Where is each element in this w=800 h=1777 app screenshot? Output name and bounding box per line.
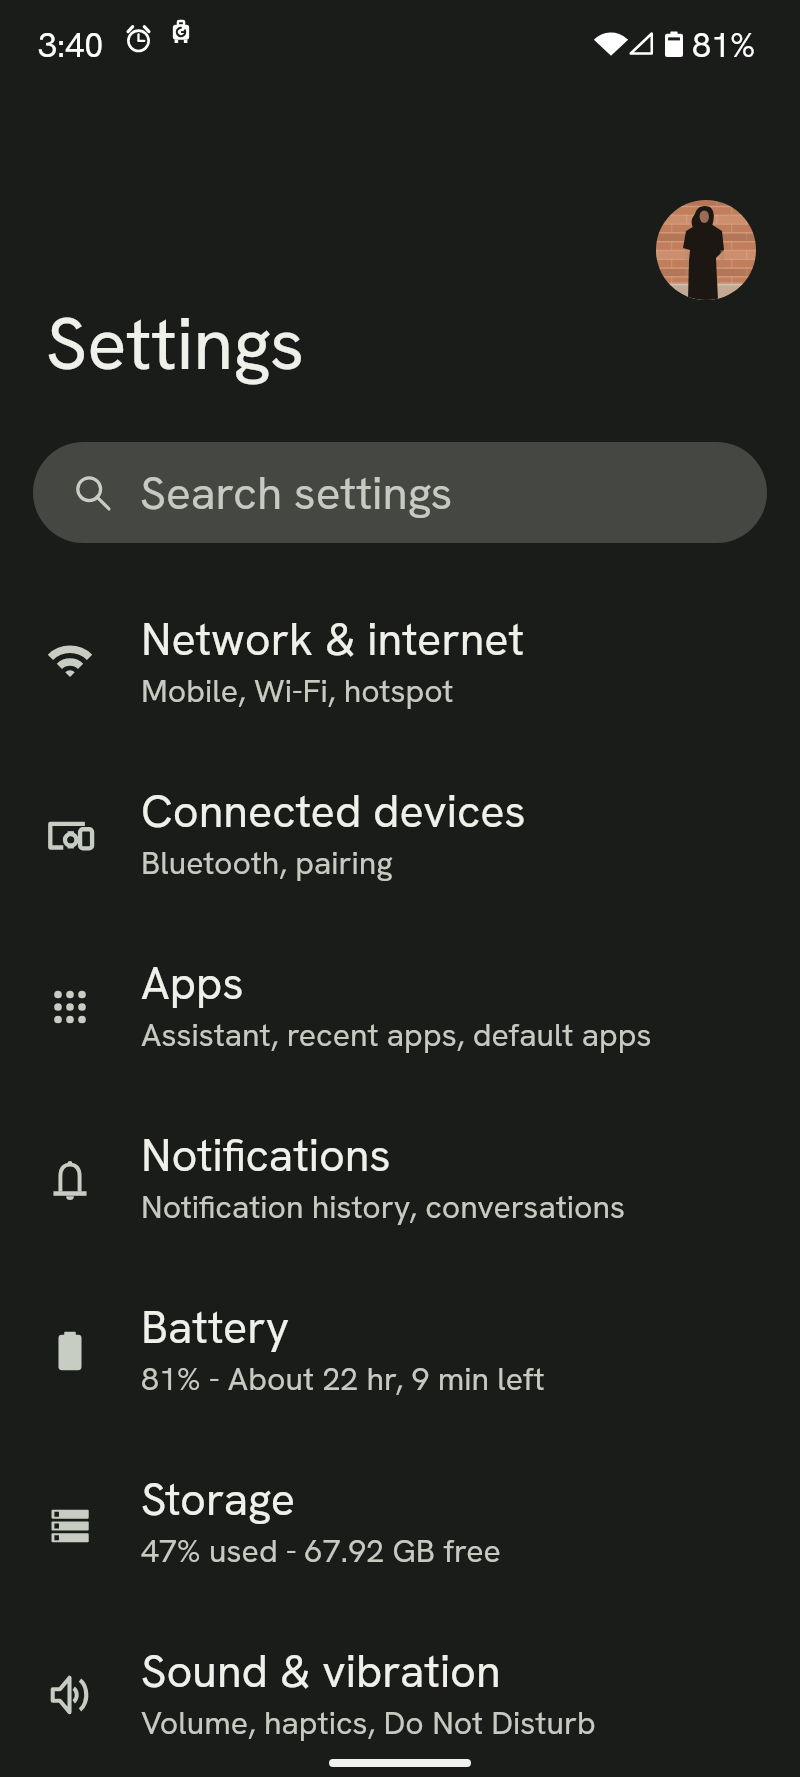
staticText: Storage [141,1470,296,1529]
staticText: Volume, haptics, Do Not Disturb [141,1702,596,1744]
staticText: 3:40 [38,23,104,67]
staticText: Search settings [140,463,453,523]
staticText: Bluetooth, pairing [141,842,393,884]
button[interactable]: Connected devices [0,758,800,930]
staticText: Connected devices [141,782,526,841]
staticText: Settings [46,296,305,391]
staticText: Battery [141,1298,290,1357]
staticText: Assistant, recent apps, default apps [141,1014,652,1056]
staticText: Mobile, Wi-Fi, hotspot [141,670,454,712]
button[interactable]: Notifications [0,1102,800,1274]
staticText: Apps [141,954,244,1013]
button[interactable]: Search settings [33,442,767,543]
staticText: 81% [692,23,756,67]
button[interactable]: Network & internet [0,586,800,758]
button[interactable]: Account [656,200,756,300]
staticText: Notification history, conversations [141,1186,626,1228]
button[interactable]: Storage [0,1446,800,1618]
staticText: Network & internet [141,610,524,669]
button[interactable]: Apps [0,930,800,1102]
button[interactable]: Battery [0,1274,800,1446]
staticText: Sound & vibration [141,1642,501,1701]
staticText: 81% - About 22 hr, 9 min left [141,1358,545,1400]
staticText: 47% used - 67.92 GB free [141,1530,501,1572]
staticText: Notifications [141,1126,391,1185]
button[interactable]: Sound & vibration [0,1618,800,1777]
